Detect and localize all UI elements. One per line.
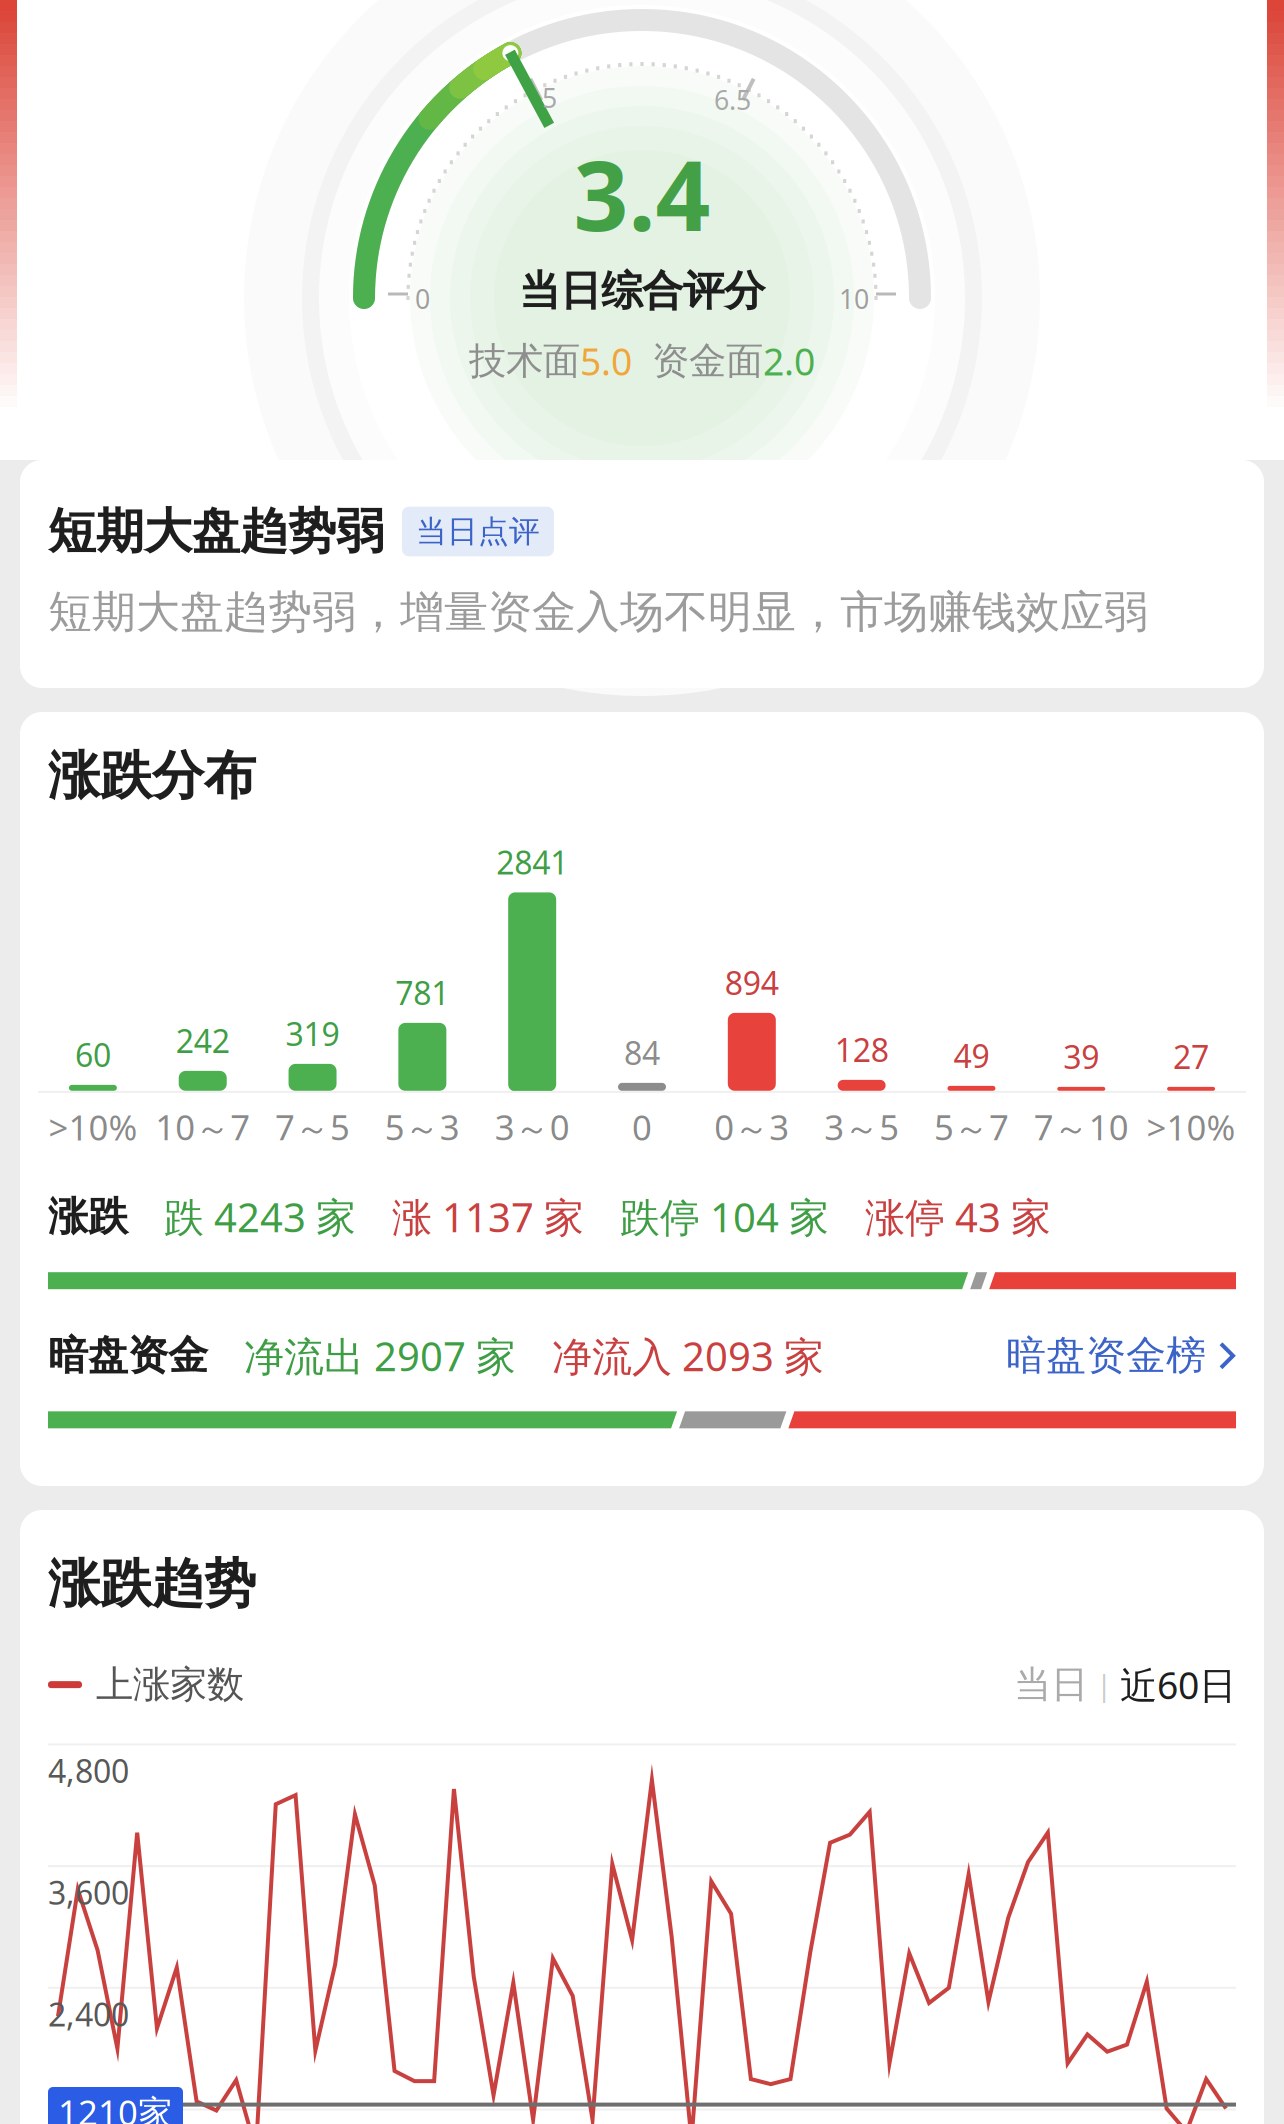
staticText: 128 [835,1028,889,1071]
staticText: 242 [176,1019,230,1062]
staticText: 涨 1137 家 [356,1190,584,1243]
staticText: 6.5 [714,82,751,117]
staticText: 3,600 [48,1871,129,1914]
staticText: 0 [632,1104,652,1150]
staticText: 2.0 [763,336,815,386]
button[interactable]: 当日 [1014,1662,1088,1708]
staticText: 4,800 [48,1749,129,1792]
staticText: 净流出 2907 家 [208,1329,516,1382]
staticText: 5.0 [580,336,632,386]
button[interactable]: 暗盘资金榜 [1006,1331,1236,1380]
staticText: 涨跌分布 [48,744,256,808]
staticText: 涨停 43 家 [829,1190,1051,1243]
staticText: 当日 [1014,1662,1088,1708]
staticText: 暗盘资金 [48,1331,208,1380]
staticText: 781 [395,971,449,1014]
staticText: 净流入 2093 家 [516,1329,824,1382]
staticText: 跌 4243 家 [128,1190,356,1243]
staticText: >10% [1147,1104,1236,1150]
staticText: 2,400 [48,1993,129,2035]
staticText: 49 [953,1034,989,1077]
staticText: >10% [48,1104,137,1150]
staticText: 短期大盘趋势弱 [48,502,384,561]
staticText: 涨跌趋势 [48,1552,256,1616]
staticText: 5 [542,80,557,115]
staticText: 2841 [496,841,568,883]
staticText: 跌停 104 家 [584,1190,829,1243]
staticText: 7～5 [275,1104,350,1150]
staticText: 1210家 [58,2089,173,2124]
staticText: 3～5 [824,1104,899,1150]
staticText: 27 [1173,1035,1209,1078]
staticText: 60 [75,1033,111,1076]
staticText: 84 [624,1031,660,1074]
staticText: 5～3 [385,1104,460,1150]
staticText: 技术面 [469,338,580,384]
staticText: 10 [839,281,869,316]
staticText: 上涨家数 [96,1662,244,1708]
staticText: 当日点评 [416,513,540,550]
staticText: 近60日 [1120,1660,1236,1709]
staticText: 5～7 [934,1104,1009,1150]
staticText: 894 [725,961,779,1004]
staticText: 当日综合评分 [519,265,765,316]
staticText: 3.4 [573,130,710,257]
staticText: 暗盘资金榜 [1006,1331,1206,1380]
staticText: 3～0 [495,1104,570,1150]
staticText: 0 [415,281,430,316]
staticText: 7～10 [1034,1104,1129,1150]
staticText: 0～3 [714,1104,789,1150]
staticText: 10～7 [155,1104,250,1150]
staticText: 319 [285,1012,339,1055]
staticText: 资金面 [652,338,763,384]
staticText: 涨跌 [48,1192,128,1241]
staticText: | [1088,1665,1120,1704]
staticText: 1,200 [48,2114,129,2124]
button[interactable]: 近60日 [1120,1660,1236,1709]
staticText: 短期大盘趋势弱，增量资金入场不明显，市场赚钱效应弱 [48,585,1148,639]
staticText: 39 [1063,1035,1099,1078]
